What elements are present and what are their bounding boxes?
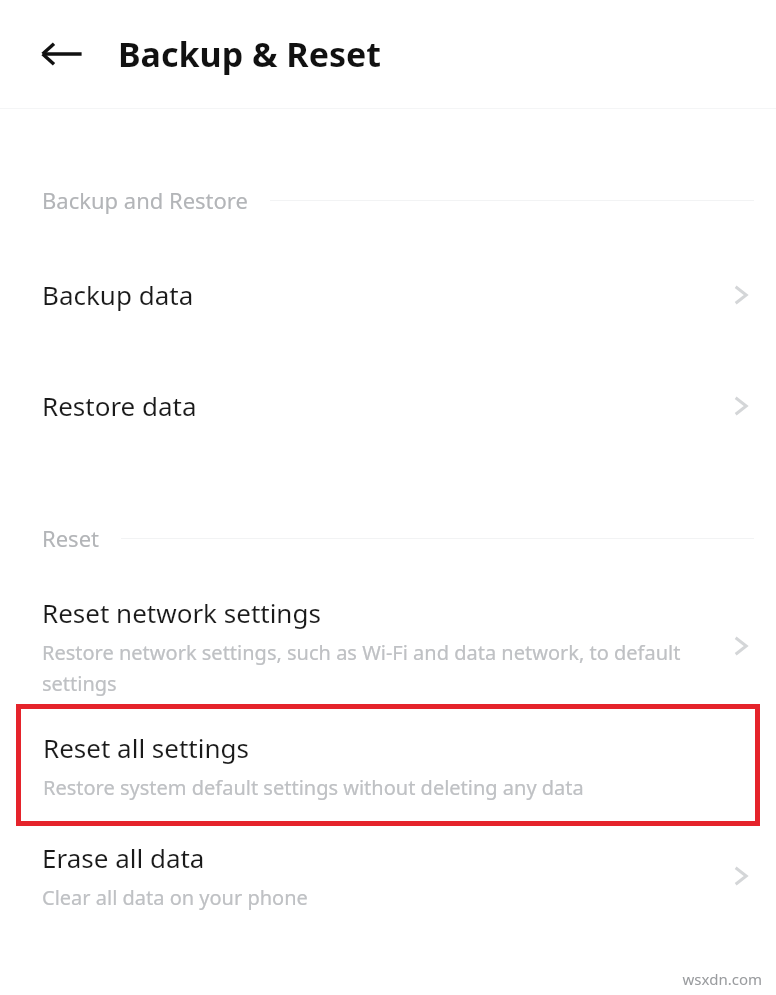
staticText: Clear all data on your phone (42, 884, 308, 911)
button[interactable]: Back (34, 26, 90, 82)
staticText: Backup data (42, 277, 194, 312)
staticText: Backup and Restore (42, 185, 248, 215)
staticText: Reset network settings (42, 595, 321, 630)
staticText: Restore system default settings without … (43, 774, 584, 801)
button[interactable]: Backup data (0, 277, 776, 312)
staticText: wsxdn.com (682, 969, 762, 989)
staticText: Restore network settings, such as Wi-Fi … (42, 639, 702, 696)
button[interactable]: Reset network settings (0, 595, 776, 696)
staticText: Erase all data (42, 840, 205, 875)
button[interactable]: Restore data (0, 388, 776, 423)
staticText: Reset (42, 523, 99, 553)
button[interactable]: Erase all data (0, 840, 776, 911)
button[interactable]: Reset all settings (16, 704, 760, 826)
staticText: Reset all settings (43, 730, 249, 765)
staticText: Backup & Reset (118, 31, 382, 77)
staticText: Restore data (42, 388, 197, 423)
